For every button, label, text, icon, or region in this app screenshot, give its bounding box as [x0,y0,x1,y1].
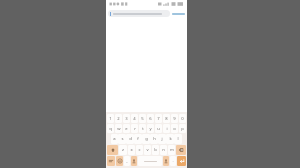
staticText: b [154,147,157,153]
button[interactable]: m [168,145,175,155]
button[interactable]: f [134,134,142,144]
staticText: 3 [125,116,128,122]
staticText: u [157,126,160,132]
button[interactable]: a [111,134,118,144]
button[interactable]: r [131,124,138,133]
staticText: t [142,126,144,132]
staticText: p [181,126,184,132]
button[interactable]: n [160,145,167,155]
staticText: v [146,147,149,153]
staticText: 9 [173,116,176,122]
button[interactable]: 8 [163,114,170,123]
button[interactable]: o [171,124,178,133]
button[interactable]: Voice input [131,156,137,166]
button[interactable]: 2 [115,114,122,123]
button[interactable]: Cancel [172,10,185,18]
staticText: 5 [141,116,144,122]
staticText: 7 [157,116,160,122]
button[interactable]: Emoji [116,156,123,166]
button[interactable]: 6 [147,114,154,123]
button[interactable]: v [144,145,151,155]
button[interactable]: s [118,134,126,144]
staticText: 4 [133,116,136,122]
staticText: h [153,136,156,142]
staticText: f [137,136,139,142]
staticText: m [170,147,174,153]
button[interactable]: 9 [171,114,178,123]
button[interactable]: h [150,134,158,144]
button[interactable]: Symbols [107,156,115,166]
button[interactable]: k [166,134,174,144]
button[interactable]: t [139,124,146,133]
staticText: k [169,136,172,142]
button[interactable]: 1 [107,114,114,123]
staticText: e [125,126,128,132]
staticText: l [177,136,179,142]
button[interactable]: i [163,124,170,133]
button[interactable]: u [155,124,162,133]
button[interactable]: d [126,134,134,144]
button[interactable]: z [119,145,127,155]
staticText: c [138,147,141,153]
staticText: 8 [165,116,168,122]
staticText: 2 [117,116,120,122]
staticText: r [134,126,136,132]
staticText: j [161,136,163,142]
button[interactable]: Enter [177,156,186,166]
button[interactable]: 4 [131,114,138,123]
button[interactable]: 5 [139,114,146,123]
button[interactable]: l [174,134,182,144]
button[interactable]: Shift [107,145,118,155]
button[interactable]: 3 [123,114,130,123]
button[interactable]: Space [138,156,162,166]
button[interactable]: Backspace [176,145,186,155]
staticText: z [122,147,124,153]
staticText: . [172,158,174,164]
button[interactable]: x [128,145,135,155]
staticText: s [121,136,124,142]
button[interactable]: 0 [179,114,186,123]
staticText: 1 [109,116,112,122]
button[interactable]: q [107,124,114,133]
staticText: 6 [149,116,152,122]
staticText: , [126,158,128,164]
button[interactable] [108,10,170,17]
button[interactable]: Settings [163,156,169,166]
button[interactable]: j [158,134,166,144]
staticText: g [145,136,148,142]
button[interactable]: g [142,134,150,144]
staticText: i [166,126,168,132]
staticText: d [129,136,132,142]
button[interactable]: y [147,124,154,133]
button[interactable]: p [179,124,186,133]
staticText: x [130,147,133,153]
button[interactable]: , [124,156,130,166]
staticText: w [117,126,121,132]
staticText: y [149,126,152,132]
staticText: 0 [181,116,184,122]
button[interactable]: b [152,145,159,155]
staticText: q [109,126,112,132]
button[interactable]: 7 [155,114,162,123]
button[interactable]: w [115,124,122,133]
staticText: n [162,147,165,153]
button[interactable]: c [136,145,143,155]
button[interactable]: e [123,124,130,133]
staticText: o [173,126,176,132]
staticText: a [113,136,116,142]
